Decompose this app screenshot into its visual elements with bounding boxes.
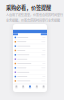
- staticText: 人台用了这些清单，价签也合适的时间单行: [6, 13, 63, 17]
- button[interactable]: Me: [40, 84, 47, 89]
- staticText: 采购必看，价签提醒: [6, 4, 51, 11]
- button[interactable]: Home: [13, 84, 20, 89]
- button[interactable]: [13, 57, 47, 61]
- button[interactable]: [13, 40, 47, 44]
- button[interactable]: [13, 75, 47, 79]
- button[interactable]: Reports: [33, 84, 40, 89]
- button[interactable]: [13, 53, 47, 57]
- button[interactable]: [13, 48, 47, 53]
- button[interactable]: Orders: [20, 84, 27, 89]
- button[interactable]: [13, 70, 47, 74]
- button[interactable]: [13, 35, 47, 40]
- staticText: 业务提醒，价签合适的时间单行业务提醒: [6, 18, 60, 23]
- button[interactable]: [13, 79, 47, 83]
- button[interactable]: [13, 61, 47, 66]
- button[interactable]: Prices: [27, 84, 33, 89]
- button[interactable]: [13, 66, 47, 70]
- button[interactable]: [13, 44, 47, 48]
